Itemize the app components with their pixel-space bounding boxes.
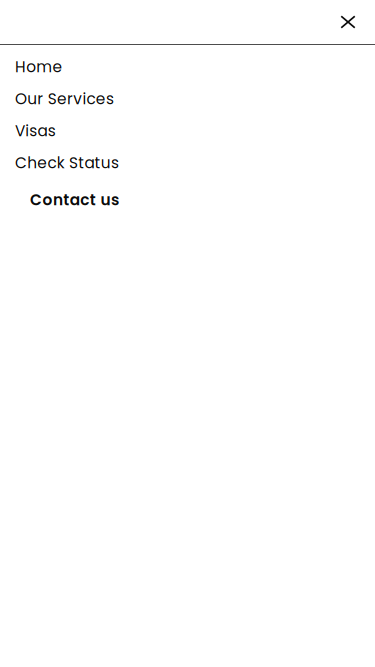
staticText: Home xyxy=(15,56,62,78)
button[interactable]: Contact us xyxy=(0,179,375,221)
button[interactable]: Home xyxy=(0,51,375,83)
button[interactable]: Our Services xyxy=(0,83,375,115)
button[interactable]: Visas xyxy=(0,115,375,147)
staticText: Our Services xyxy=(15,88,114,110)
staticText: Contact us xyxy=(30,189,119,211)
staticText: Check Status xyxy=(15,152,119,174)
staticText: Visas xyxy=(15,120,56,142)
button[interactable]: Check Status xyxy=(0,147,375,179)
button[interactable]: Close menu xyxy=(330,4,366,40)
